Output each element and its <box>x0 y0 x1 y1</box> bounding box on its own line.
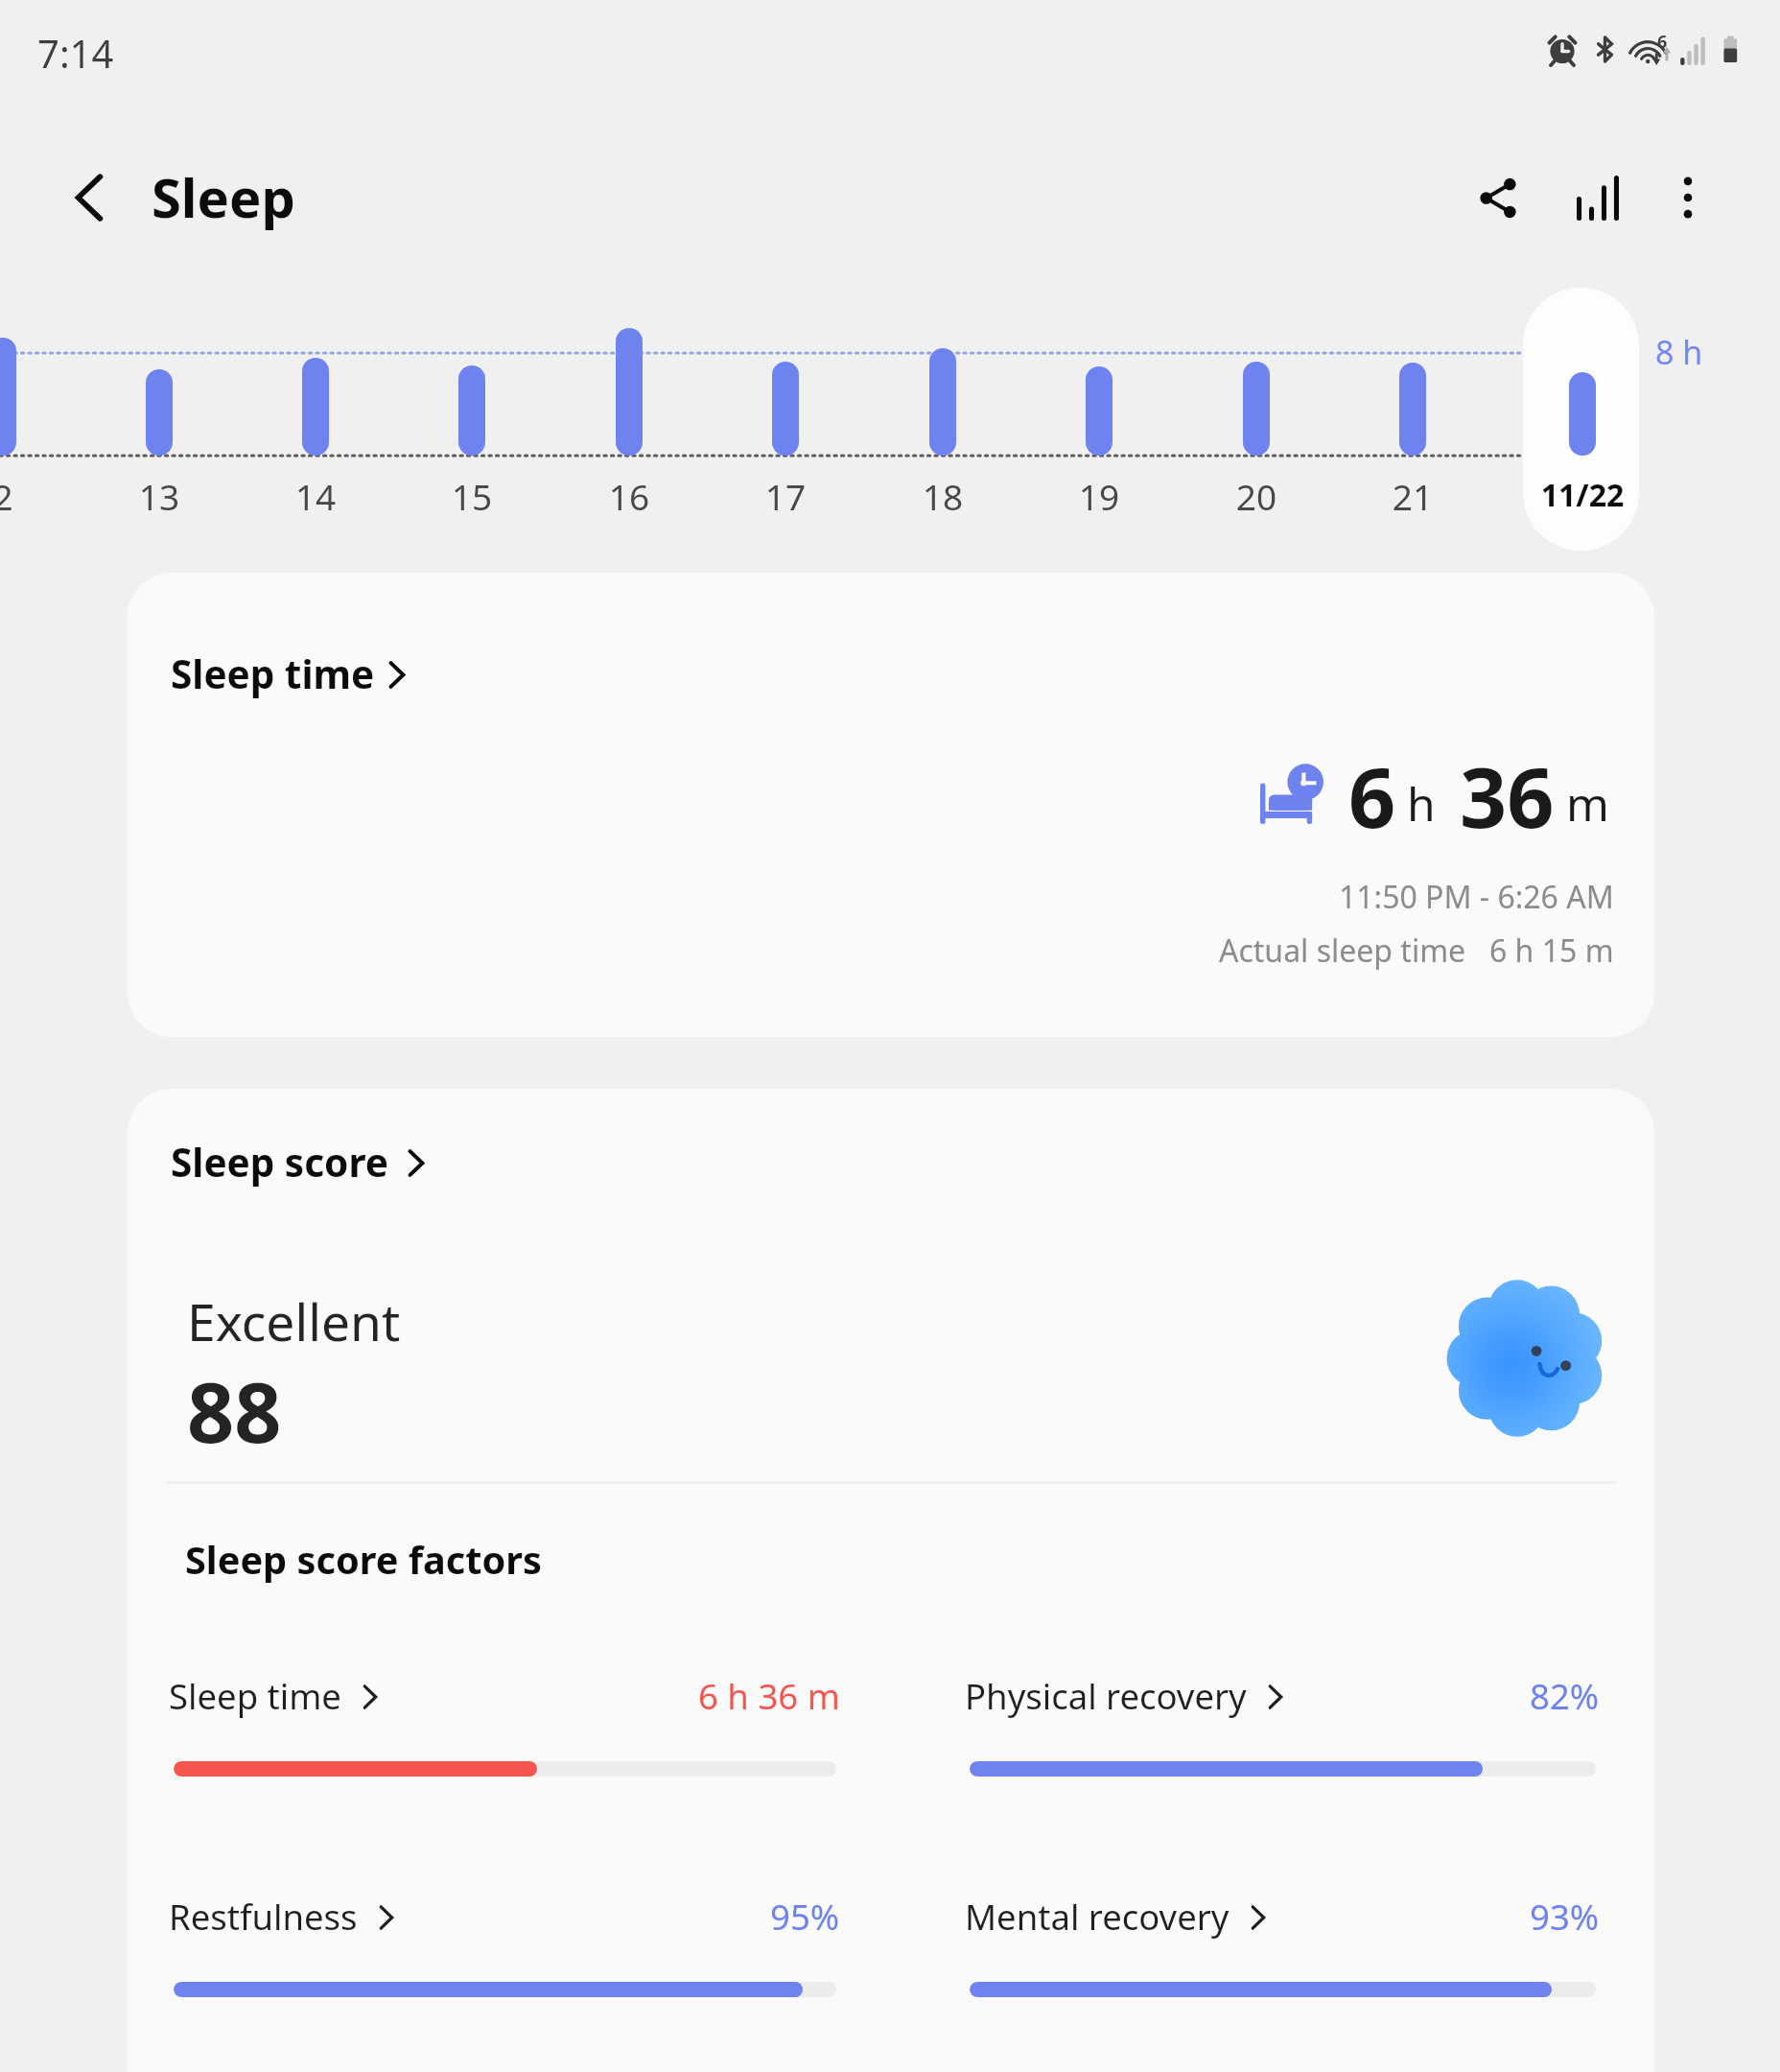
staticText: Restfulness <box>169 1893 358 1941</box>
button[interactable]: Sleep time <box>128 573 1654 1037</box>
staticText: 95% <box>770 1893 840 1941</box>
button[interactable]: Restfulness <box>174 1893 836 1997</box>
button[interactable]: Sleep time <box>171 647 406 700</box>
button[interactable]: Chart <box>1544 144 1651 251</box>
staticText: h <box>1407 772 1436 835</box>
staticText: Actual sleep time <box>1219 930 1466 972</box>
button[interactable]: Share <box>1444 144 1552 251</box>
staticText: 21 <box>1355 472 1470 520</box>
button[interactable]: Selected day 11/22 <box>1523 288 1639 551</box>
staticText: Sleep time <box>171 647 375 700</box>
staticText: 8 h <box>1655 330 1703 374</box>
staticText: 13 <box>102 472 217 520</box>
staticText: 15 <box>414 472 529 520</box>
staticText: 93% <box>1530 1893 1600 1941</box>
staticText: 6 <box>1348 740 1396 852</box>
staticText: 19 <box>1042 472 1157 520</box>
staticText: Mental recovery <box>965 1893 1230 1941</box>
staticText: Sleep time <box>169 1672 341 1720</box>
button[interactable]: Physical recovery <box>970 1672 1596 1777</box>
staticText: Sleep score <box>171 1136 388 1189</box>
staticText: 36 <box>1460 740 1555 852</box>
button[interactable]: More options <box>1634 144 1742 251</box>
staticText: 82% <box>1530 1672 1600 1720</box>
staticText: 6 h 36 m <box>698 1672 840 1720</box>
button[interactable]: Sleep score <box>171 1136 425 1189</box>
staticText: 88 <box>187 1354 282 1467</box>
staticText: 7:14 <box>37 27 114 79</box>
button[interactable]: Back <box>29 137 150 258</box>
staticText: 11:50 PM - 6:26 AM <box>1339 876 1614 918</box>
button[interactable]: Mental recovery <box>970 1893 1596 1997</box>
staticText: 6 <box>1657 30 1668 54</box>
staticText: 6 h 15 m <box>1489 930 1614 972</box>
staticText: Physical recovery <box>965 1672 1247 1720</box>
staticText: 18 <box>885 472 1000 520</box>
staticText: Sleep <box>152 160 295 233</box>
staticText: 16 <box>572 472 687 520</box>
staticText: 14 <box>258 472 373 520</box>
staticText: 2 <box>0 472 60 520</box>
staticText: 11/22 <box>1487 474 1678 516</box>
staticText: Excellent <box>187 1286 401 1356</box>
staticText: 20 <box>1199 472 1314 520</box>
staticText: m <box>1566 772 1609 835</box>
staticText: 17 <box>728 472 843 520</box>
staticText: Sleep score factors <box>185 1534 542 1586</box>
button[interactable]: Sleep time <box>174 1672 836 1777</box>
